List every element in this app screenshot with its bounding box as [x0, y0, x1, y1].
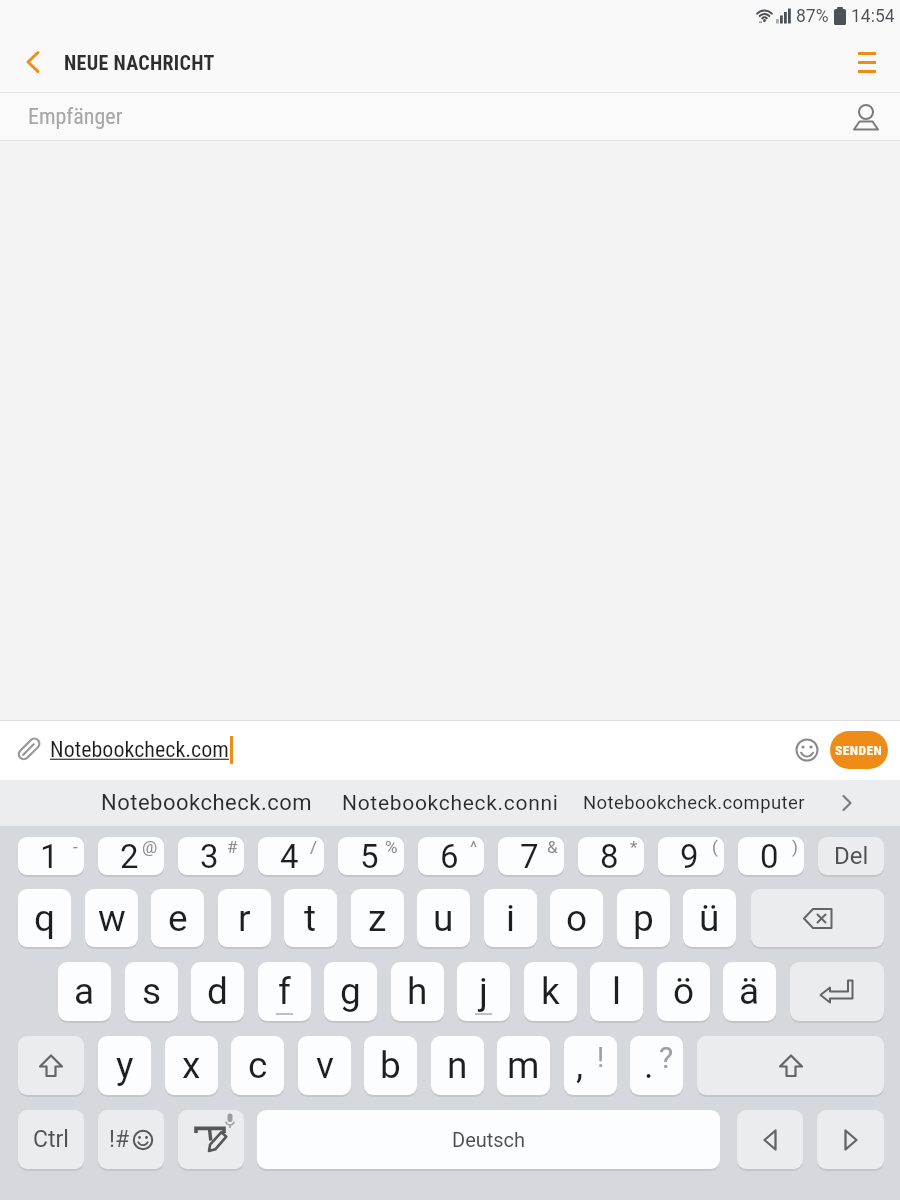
button[interactable]: q	[18, 889, 71, 947]
staticText: o	[566, 897, 588, 940]
button[interactable]: Ctrl	[18, 1110, 84, 1169]
button[interactable]: j	[457, 962, 510, 1021]
button[interactable]: n	[431, 1036, 484, 1095]
button[interactable]	[697, 1036, 884, 1095]
button[interactable]: .	[630, 1036, 683, 1095]
button[interactable]: s	[125, 962, 178, 1021]
staticText: d	[207, 970, 228, 1013]
button[interactable]	[14, 42, 52, 82]
button[interactable]: i	[484, 889, 537, 947]
staticText: q	[34, 897, 56, 940]
button[interactable]: l	[590, 962, 643, 1021]
button[interactable]: p	[617, 889, 670, 947]
button[interactable]: Empfänger	[0, 92, 900, 141]
button[interactable]: v	[298, 1036, 351, 1095]
button[interactable]	[8, 728, 48, 772]
staticText: -	[73, 837, 78, 857]
button[interactable]	[846, 97, 886, 137]
staticText: y	[116, 1044, 134, 1087]
staticText: 3	[200, 837, 219, 875]
staticText: Notebookcheck.computer	[583, 792, 805, 814]
button[interactable]	[737, 1110, 803, 1169]
staticText: f	[278, 970, 291, 1013]
button[interactable]	[817, 1110, 884, 1169]
button[interactable]: 3	[178, 837, 244, 875]
button[interactable]: k	[524, 962, 577, 1021]
button[interactable]: w	[85, 889, 138, 947]
staticText: ö	[673, 970, 695, 1013]
staticText: n	[447, 1044, 468, 1087]
staticText: u	[433, 897, 454, 940]
staticText: 5	[360, 837, 379, 875]
button[interactable]: 2	[98, 837, 164, 875]
staticText: (	[712, 837, 718, 857]
button[interactable]: x	[165, 1036, 218, 1095]
button[interactable]: g	[324, 962, 377, 1021]
staticText: z	[368, 897, 387, 940]
button[interactable]: Notebookcheck.computer	[572, 780, 816, 826]
staticText: m	[507, 1044, 540, 1087]
button[interactable]: Notebookcheck.com	[90, 780, 324, 826]
button[interactable]: c	[231, 1036, 284, 1095]
button[interactable]: e	[151, 889, 204, 947]
button[interactable]	[178, 1110, 244, 1169]
button[interactable]: 0	[738, 837, 804, 875]
button[interactable]: ,	[564, 1036, 617, 1095]
staticText: b	[380, 1044, 401, 1087]
staticText: ü	[699, 897, 720, 940]
staticText: v	[316, 1044, 334, 1087]
button[interactable]: ü	[683, 889, 736, 947]
staticText: Deutsch	[452, 1128, 526, 1151]
button[interactable]: f	[258, 962, 311, 1021]
button[interactable]: b	[364, 1036, 417, 1095]
button[interactable]	[18, 1036, 84, 1095]
button[interactable]: Notebookcheck.conni	[330, 780, 570, 826]
button[interactable]: r	[218, 889, 271, 947]
button[interactable]: 9	[658, 837, 724, 875]
button[interactable]: 1	[18, 837, 84, 875]
staticText: 8	[600, 837, 619, 875]
button[interactable]	[828, 780, 866, 826]
button[interactable]: 6	[418, 837, 484, 875]
button[interactable]: y	[98, 1036, 151, 1095]
button[interactable]: !#	[98, 1110, 164, 1169]
staticText: e	[168, 897, 188, 940]
staticText: ä	[739, 970, 760, 1013]
staticText: Notebookcheck.com	[50, 737, 229, 763]
button[interactable]: z	[351, 889, 404, 947]
button[interactable]: t	[284, 889, 337, 947]
staticText: *	[630, 837, 638, 857]
button[interactable]: o	[550, 889, 603, 947]
staticText: w	[98, 897, 126, 940]
button[interactable]: u	[417, 889, 470, 947]
button[interactable]: d	[191, 962, 244, 1021]
button[interactable]: a	[58, 962, 111, 1021]
button[interactable]	[751, 889, 884, 947]
button[interactable]	[790, 962, 884, 1021]
staticText: s	[142, 970, 162, 1013]
button[interactable]: Del	[818, 837, 884, 875]
staticText: SENDEN	[835, 742, 883, 758]
staticText: !#	[109, 1126, 130, 1153]
button[interactable]	[846, 40, 888, 84]
button[interactable]: h	[391, 962, 444, 1021]
button[interactable]: 4	[258, 837, 324, 875]
button[interactable]: SENDEN	[830, 731, 888, 769]
staticText: 0	[760, 837, 779, 875]
button[interactable]: Deutsch	[257, 1110, 720, 1169]
staticText: 9	[680, 837, 699, 875]
staticText: l	[612, 970, 621, 1013]
button[interactable]: ä	[723, 962, 776, 1021]
staticText: j	[479, 970, 488, 1013]
button[interactable]: ö	[657, 962, 710, 1021]
staticText: a	[74, 970, 95, 1013]
button[interactable]: 7	[498, 837, 564, 875]
button[interactable]: 5	[338, 837, 404, 875]
staticText: Notebookcheck.com	[101, 790, 313, 816]
button[interactable]: 8	[578, 837, 644, 875]
staticText: !	[597, 1041, 605, 1074]
staticText: %	[385, 837, 398, 857]
staticText: g	[340, 970, 361, 1013]
button[interactable]	[786, 728, 828, 772]
button[interactable]: m	[497, 1036, 550, 1095]
